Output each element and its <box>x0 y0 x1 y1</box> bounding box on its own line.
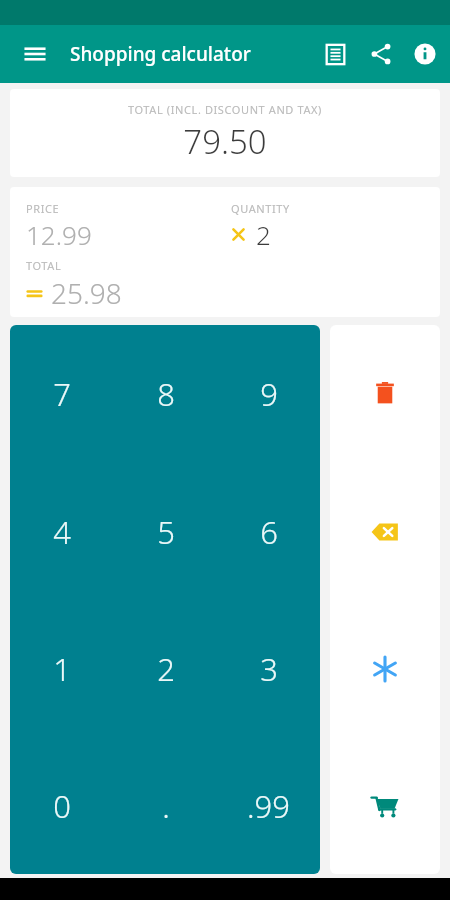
button[interactable]: 4 <box>10 463 114 600</box>
button[interactable]: . <box>114 737 217 874</box>
button[interactable]: 8 <box>114 325 217 463</box>
button[interactable]: 7 <box>10 325 114 463</box>
staticText: 0 <box>53 785 71 827</box>
staticText: 1 <box>53 648 71 690</box>
staticText: 8 <box>157 373 175 415</box>
button[interactable]: 0 <box>10 737 114 874</box>
button[interactable]: PRICE <box>10 187 440 317</box>
button[interactable]: Add to cart <box>330 737 440 874</box>
staticText: . <box>162 785 170 827</box>
button[interactable]: Backspace <box>330 463 440 600</box>
staticText: 3 <box>260 648 278 690</box>
staticText: 12.99 <box>26 217 92 252</box>
staticText: TOTAL (INCL. DISCOUNT AND TAX) <box>128 102 322 117</box>
staticText: 79.50 <box>183 119 267 164</box>
staticText: 9 <box>260 373 278 415</box>
staticText: Shopping calculator <box>70 41 251 67</box>
button[interactable]: 6 <box>217 463 320 600</box>
button[interactable]: 3 <box>217 600 320 737</box>
staticText: 2 <box>157 648 175 690</box>
button[interactable]: Discount <box>330 600 440 737</box>
staticText: TOTAL <box>26 258 62 273</box>
button[interactable]: Share <box>358 31 404 77</box>
staticText: 4 <box>53 511 71 553</box>
button[interactable]: Receipt <box>312 31 358 77</box>
button[interactable]: Menu <box>14 33 56 75</box>
button[interactable]: 5 <box>114 463 217 600</box>
button[interactable]: .99 <box>217 737 320 874</box>
staticText: 25.98 <box>51 274 122 312</box>
button[interactable]: 1 <box>10 600 114 737</box>
button[interactable]: 9 <box>217 325 320 463</box>
button[interactable]: Info <box>404 31 446 77</box>
staticText: 5 <box>157 511 175 553</box>
staticText: 2 <box>256 217 271 252</box>
button[interactable]: TOTAL (INCL. DISCOUNT AND TAX) <box>10 89 440 177</box>
staticText: .99 <box>247 785 290 827</box>
staticText: PRICE <box>26 201 60 216</box>
staticText: 6 <box>260 511 278 553</box>
button[interactable]: Clear all <box>330 325 440 463</box>
staticText: 7 <box>53 373 71 415</box>
button[interactable]: 2 <box>114 600 217 737</box>
staticText: QUANTITY <box>231 201 290 216</box>
